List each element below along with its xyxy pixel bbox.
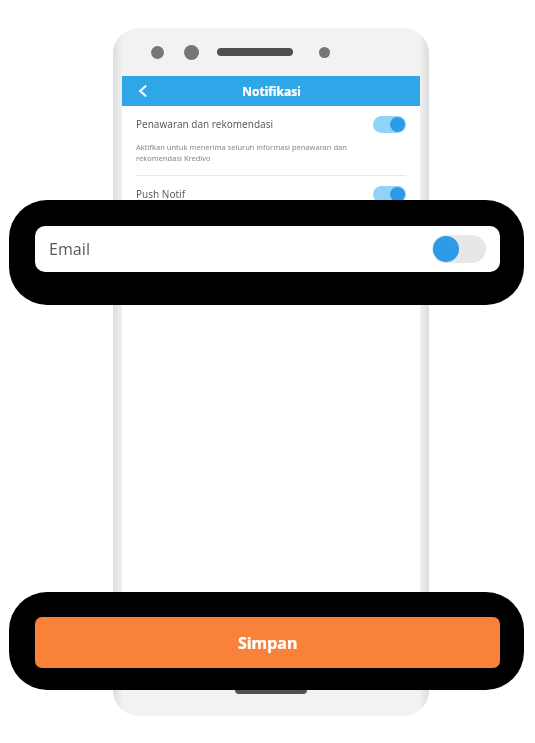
button[interactable]: Toggle on	[373, 186, 406, 203]
button[interactable]: Back	[130, 78, 156, 104]
button[interactable]: Email	[35, 226, 500, 272]
staticText: Penawaran dan rekomendasi	[136, 117, 373, 131]
button[interactable]: SMS & WhatsApp	[122, 254, 420, 290]
staticText: Notifikasi	[242, 83, 301, 99]
staticText: Email	[49, 238, 432, 260]
button[interactable]: Push Notif	[122, 176, 420, 212]
staticText: Simpan	[238, 632, 298, 654]
button[interactable]: Toggle on	[373, 116, 406, 133]
staticText: Aktifkan untuk menerima seluruh informas…	[136, 142, 380, 163]
button[interactable]: Simpan	[35, 617, 500, 668]
button[interactable]: Toggle on	[373, 264, 406, 281]
staticText: SMS & WhatsApp	[136, 265, 373, 279]
button[interactable]: Penawaran dan rekomendasi	[122, 106, 420, 176]
staticText: Push Notif	[136, 187, 373, 201]
